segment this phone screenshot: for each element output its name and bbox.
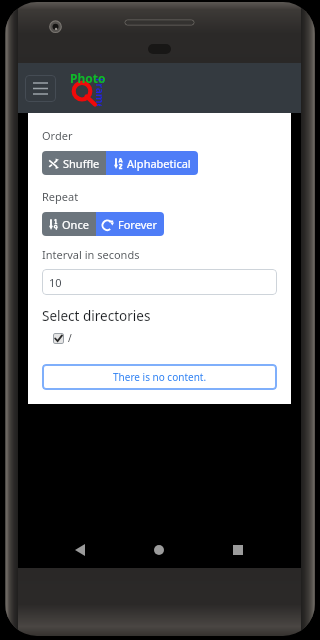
staticText: Interval in seconds (42, 247, 140, 262)
staticText: Alphabetical (127, 156, 191, 171)
button[interactable]: Root directory selected (53, 333, 64, 344)
staticText: Shuffle (63, 156, 100, 171)
button[interactable]: Open navigation menu (25, 75, 56, 102)
staticText: Once (62, 217, 89, 232)
staticText: Order (42, 128, 73, 143)
staticText: Forever (118, 217, 158, 232)
button[interactable]: Shuffle (42, 151, 106, 175)
button[interactable]: Alphabetical (106, 151, 198, 175)
button[interactable]: Recent apps (221, 533, 255, 567)
staticText: Repeat (42, 189, 79, 204)
button[interactable]: There is no content. (42, 364, 277, 390)
button[interactable]: Back (63, 533, 97, 567)
staticText: There is no content. (113, 370, 207, 384)
staticText: Frame (93, 78, 107, 106)
button[interactable]: Home (142, 533, 176, 567)
staticText: / (68, 331, 72, 345)
staticText: Select directories (42, 307, 151, 325)
button[interactable]: Forever (96, 212, 164, 236)
staticText: Photo (70, 70, 114, 86)
staticText: 10 (49, 275, 62, 290)
button[interactable]: 10 (42, 269, 277, 295)
button[interactable]: Once (42, 212, 96, 236)
